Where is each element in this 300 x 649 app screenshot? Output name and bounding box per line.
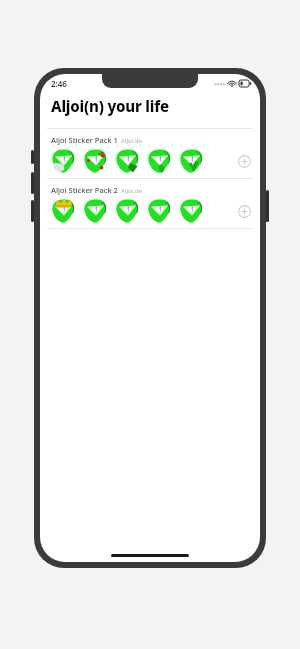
button[interactable]: Add sticker pack [236,203,252,219]
staticText: Aljoi(n) your life [51,96,169,116]
staticText: Aljoi.de [121,137,142,145]
staticText: Aljoi Sticker Pack 2 [51,185,118,195]
staticText: Aljoi Sticker Pack 1 [51,135,118,145]
button[interactable]: Aljoi Sticker Pack 2 [40,179,260,228]
staticText: Aljoi.de [121,187,142,195]
staticText: 2:46 [51,78,67,89]
button[interactable]: Add sticker pack [236,153,252,169]
button[interactable]: Aljoi Sticker Pack 1 [40,129,260,178]
